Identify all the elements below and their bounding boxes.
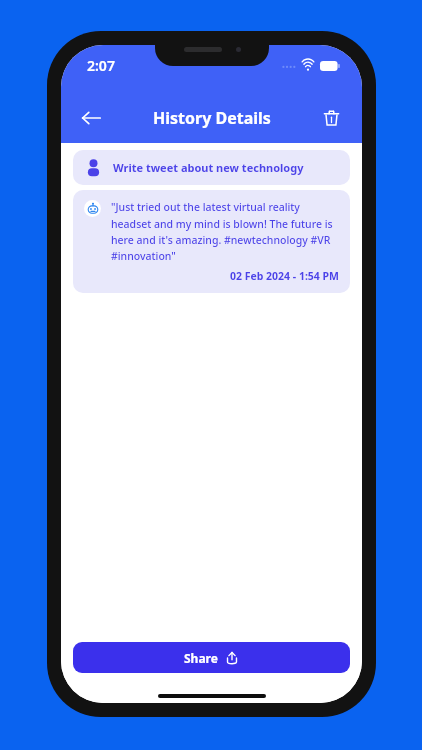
button[interactable]: Delete	[312, 99, 350, 137]
staticText: "Just tried out the latest virtual reali…	[111, 200, 339, 263]
button[interactable]: Share	[73, 642, 350, 673]
button[interactable]: "Just tried out the latest virtual reali…	[73, 190, 350, 293]
staticText: 2:07	[87, 56, 115, 75]
staticText: 02 Feb 2024 - 1:54 PM	[84, 269, 339, 283]
button[interactable]: Write tweet about new technology	[73, 150, 350, 185]
staticText: Write tweet about new technology	[113, 160, 304, 175]
staticText: Share	[184, 650, 218, 666]
button[interactable]: Back	[71, 98, 111, 138]
staticText: History Details	[153, 107, 271, 129]
